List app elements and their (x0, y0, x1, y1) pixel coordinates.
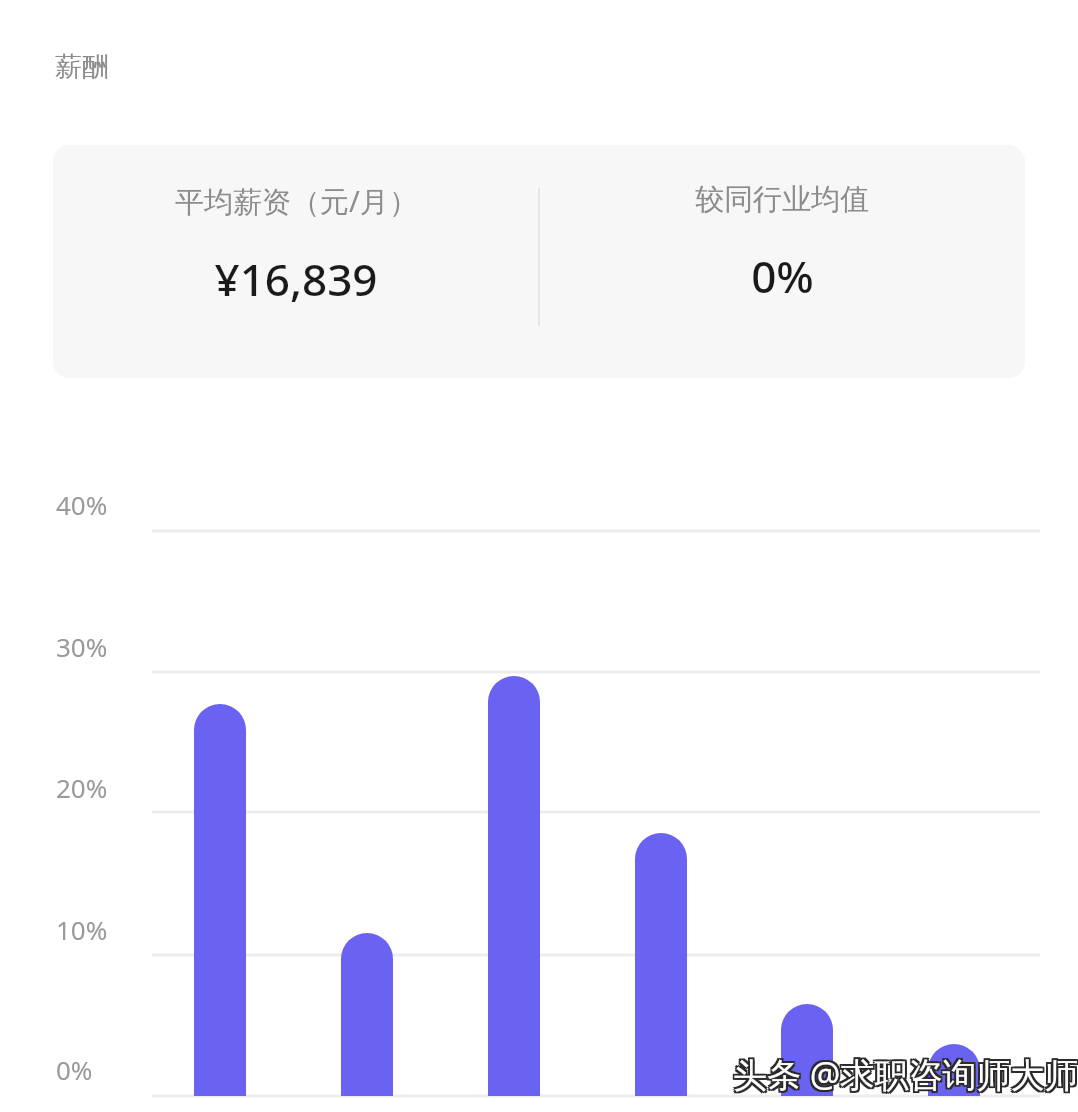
staticText: 头条 @求职咨询师大师兄 (733, 1049, 1078, 1095)
button[interactable]: 平均薪资（元/月） (53, 145, 1025, 378)
staticText: 头条 @求职咨询师大师兄 (735, 1051, 1078, 1097)
staticText: 0% (751, 246, 814, 306)
staticText: 0% (56, 1052, 93, 1087)
staticText: 头条 @求职咨询师大师兄 (733, 1051, 1078, 1097)
staticText: 头条 @求职咨询师大师兄 (735, 1053, 1078, 1099)
staticText: 较同行业均值 (695, 181, 869, 218)
staticText: 薪酬 (55, 50, 109, 84)
staticText: 头条 @求职咨询师大师兄 (731, 1049, 1078, 1095)
staticText: 20% (56, 770, 108, 805)
staticText: 10% (56, 912, 108, 947)
staticText: 头条 @求职咨询师大师兄 (733, 1053, 1078, 1099)
staticText: 30% (56, 629, 108, 664)
staticText: 平均薪资（元/月） (175, 181, 418, 221)
staticText: 40% (56, 487, 108, 522)
staticText: 头条 @求职咨询师大师兄 (731, 1053, 1078, 1099)
staticText: 头条 @求职咨询师大师兄 (735, 1049, 1078, 1095)
staticText: 头条 @求职咨询师大师兄 (731, 1051, 1078, 1097)
staticText: ¥16,839 (214, 249, 378, 309)
